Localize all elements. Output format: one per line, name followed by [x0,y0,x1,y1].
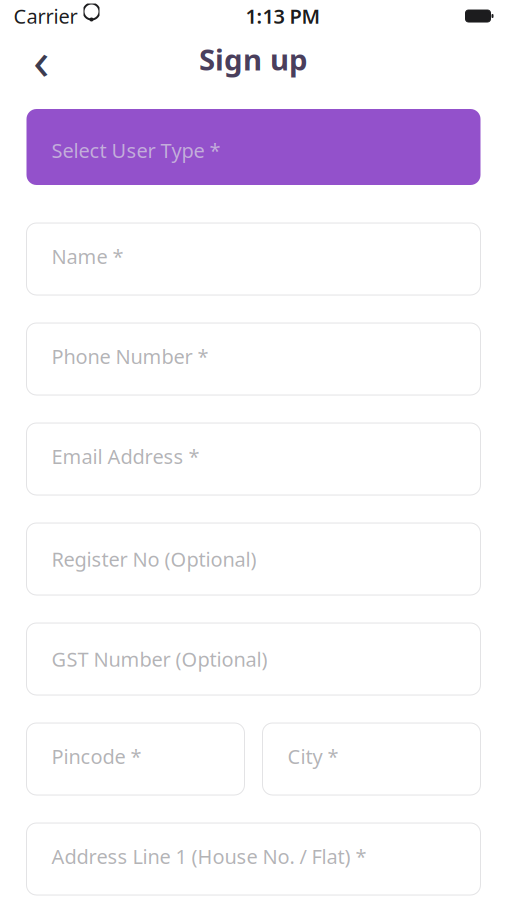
staticText: Register No (Optional) [51,546,256,572]
button[interactable]: Back [19,37,63,81]
button[interactable]: Pincode * [26,723,244,795]
button[interactable]: City * [262,723,480,795]
staticText: Phone Number * [51,343,208,370]
staticText: City * [287,743,338,770]
staticText: Select User Type * [51,137,220,164]
staticText: Pincode * [51,743,141,770]
button[interactable]: Name * [26,223,480,295]
staticText: GST Number (Optional) [51,646,267,672]
button[interactable]: Select User Type * [26,109,480,185]
button[interactable]: Phone Number * [26,323,480,395]
staticText: Name * [51,243,123,270]
staticText: Carrier [13,3,77,29]
button[interactable]: Address Line 1 (House No. / Flat) * [26,823,480,895]
button[interactable]: Register No (Optional) [26,523,480,595]
staticText: ‹ [33,24,50,94]
staticText: Address Line 1 (House No. / Flat) * [51,843,366,870]
staticText: 1:13 PM [245,3,320,29]
button[interactable]: GST Number (Optional) [26,623,480,695]
staticText: Email Address * [51,443,199,470]
staticText: Sign up [199,39,308,78]
button[interactable]: Email Address * [26,423,480,495]
